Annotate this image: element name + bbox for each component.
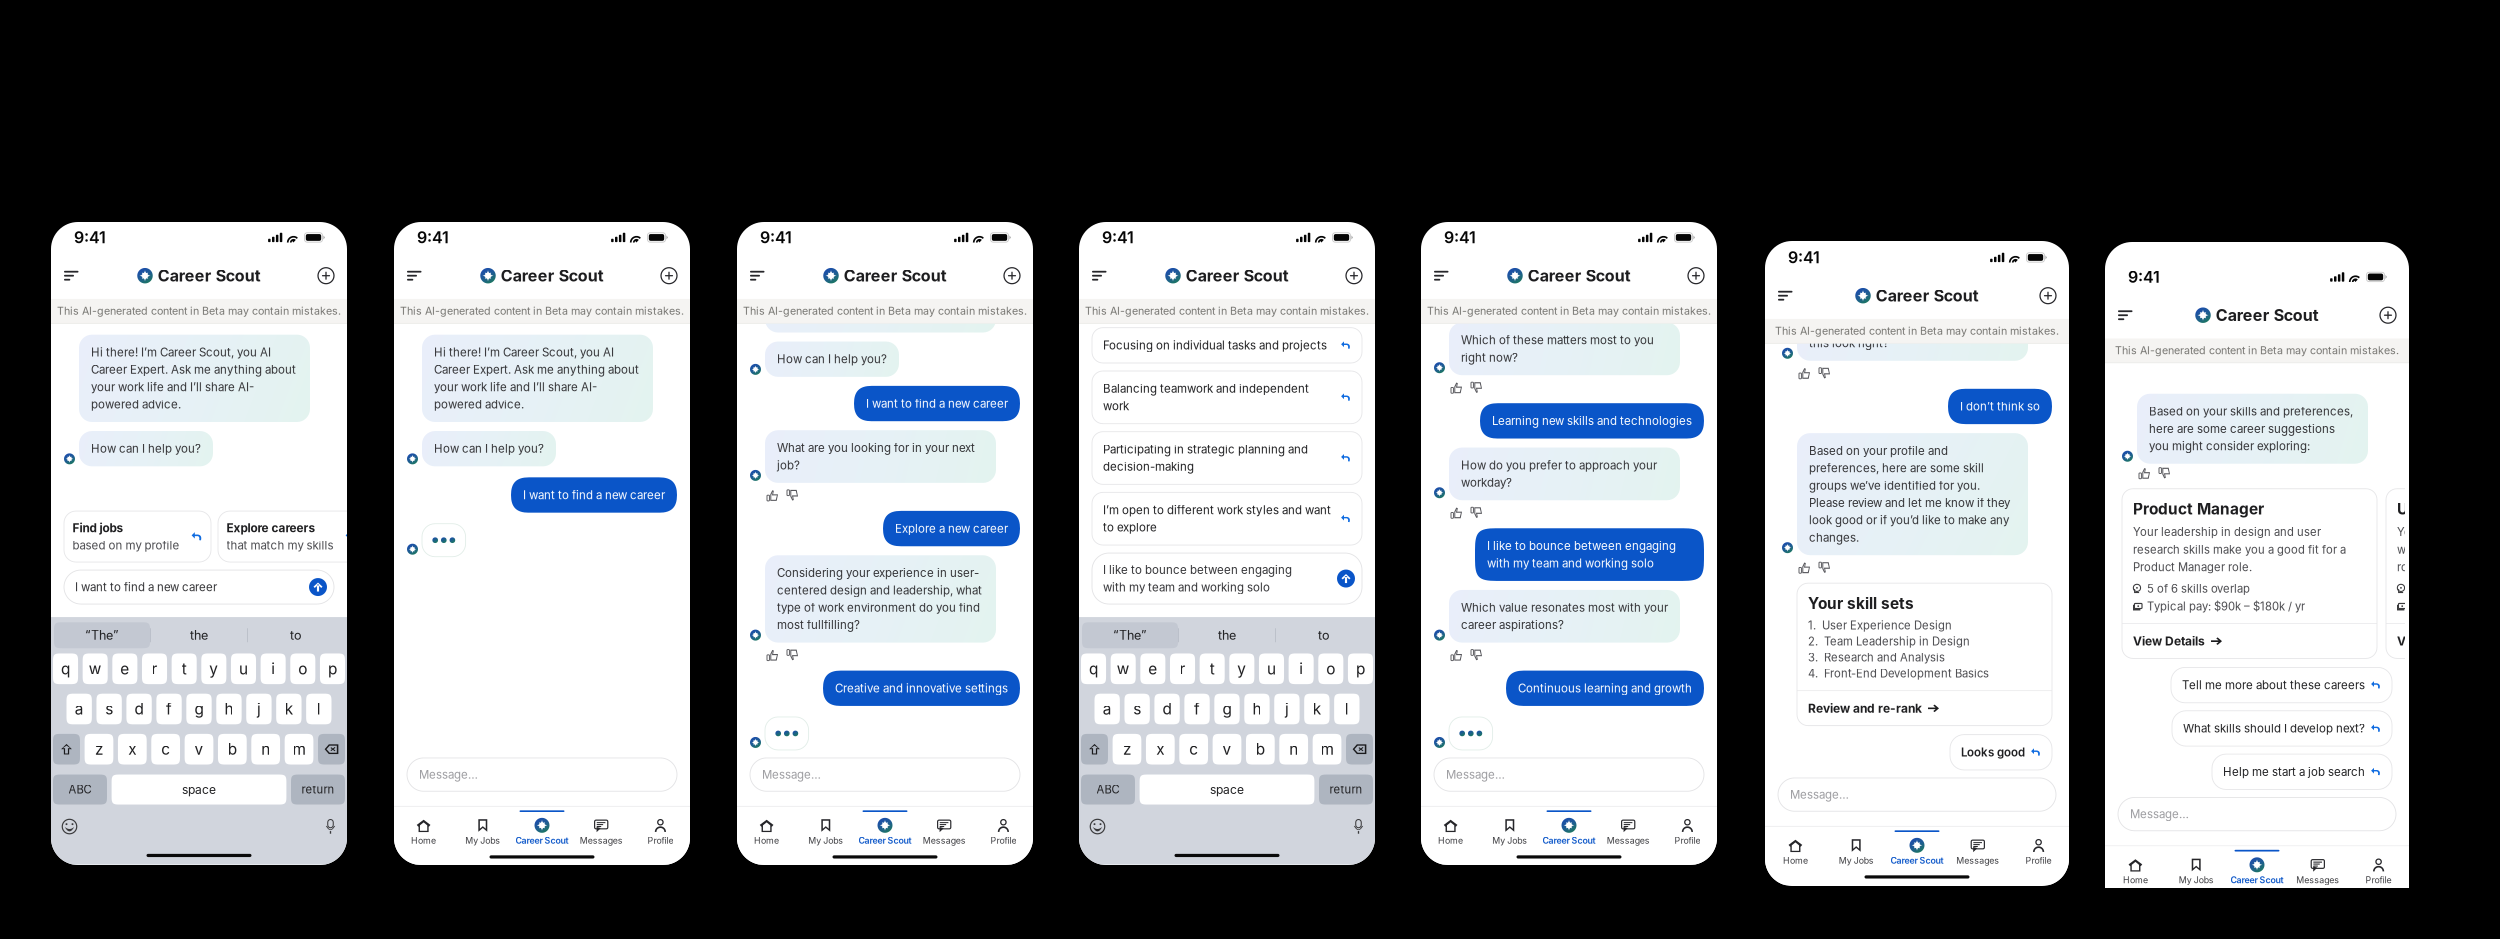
button[interactable]: Bad response <box>1819 562 1830 573</box>
button[interactable]: w <box>1111 653 1136 684</box>
button[interactable]: e <box>112 653 137 684</box>
button[interactable]: Home <box>1765 827 1826 870</box>
button[interactable]: i <box>261 653 286 684</box>
button[interactable]: Message… <box>1765 772 2069 826</box>
button[interactable]: h <box>1244 694 1270 724</box>
button[interactable]: t <box>172 653 197 684</box>
button[interactable]: return <box>291 774 345 804</box>
button[interactable]: Home <box>394 807 453 850</box>
button[interactable]: k <box>1304 694 1330 724</box>
button[interactable]: Message… <box>2105 791 2409 845</box>
button[interactable]: Bad response <box>1471 507 1482 518</box>
button[interactable]: Good response <box>1799 562 1810 573</box>
button[interactable]: Profile <box>2348 846 2409 889</box>
button[interactable]: Menu <box>1092 261 1122 291</box>
button[interactable]: Shift <box>53 734 80 764</box>
button[interactable]: Bad response <box>1471 382 1482 393</box>
button[interactable]: p <box>1348 653 1373 684</box>
button[interactable]: Home <box>2105 846 2166 889</box>
button[interactable]: h <box>216 694 242 724</box>
button[interactable]: d <box>126 694 152 724</box>
button[interactable]: Menu <box>407 261 437 291</box>
button[interactable]: y <box>201 653 226 684</box>
button[interactable]: Delete <box>1346 734 1373 764</box>
button[interactable]: Bad response <box>787 490 798 501</box>
button[interactable]: Help me start a job search <box>2212 754 2392 789</box>
button[interactable]: Messages <box>915 807 974 850</box>
button[interactable]: w <box>83 653 108 684</box>
button[interactable]: Profile <box>1658 807 1717 850</box>
button[interactable]: My Jobs <box>453 807 512 850</box>
button[interactable]: j <box>246 694 272 724</box>
button[interactable]: New chat <box>990 261 1020 291</box>
button[interactable]: x <box>1146 734 1175 764</box>
button[interactable]: u <box>1259 653 1284 684</box>
button[interactable]: i <box>1289 653 1314 684</box>
button[interactable]: n <box>251 734 280 764</box>
button[interactable]: ABC <box>1081 774 1135 804</box>
button[interactable]: c <box>151 734 180 764</box>
button[interactable]: Good response <box>767 490 778 501</box>
button[interactable]: My Jobs <box>1826 827 1887 870</box>
button[interactable]: My Jobs <box>1480 807 1539 850</box>
button[interactable]: Good response <box>1451 507 1462 518</box>
button[interactable]: d <box>1154 694 1180 724</box>
button[interactable]: Messages <box>572 807 631 850</box>
button[interactable]: Home <box>1421 807 1480 850</box>
button[interactable]: Good response <box>767 650 778 661</box>
button[interactable]: Collaborating closely with a small team <box>1092 284 1362 320</box>
button[interactable]: a <box>1094 694 1120 724</box>
button[interactable]: r <box>142 653 167 684</box>
button[interactable]: New chat <box>1674 261 1704 291</box>
button[interactable]: z <box>85 734 113 764</box>
button[interactable]: s <box>96 694 122 724</box>
button[interactable]: o <box>1318 653 1343 684</box>
button[interactable]: j <box>1274 694 1300 724</box>
button[interactable]: v <box>185 734 213 764</box>
button[interactable]: c <box>1179 734 1208 764</box>
button[interactable]: Career Scout <box>2227 846 2287 889</box>
button[interactable]: z <box>1113 734 1141 764</box>
button[interactable]: Messages <box>2287 846 2348 889</box>
button[interactable]: New chat <box>2026 281 2056 311</box>
button[interactable]: a <box>66 694 92 724</box>
button[interactable]: View Details <box>2386 624 2500 658</box>
button[interactable]: Good response <box>1451 650 1462 661</box>
button[interactable]: Messages <box>1599 807 1658 850</box>
button[interactable]: v <box>1213 734 1241 764</box>
button[interactable]: Messages <box>1947 827 2008 870</box>
button[interactable]: return <box>1319 774 1373 804</box>
button[interactable]: t <box>1200 653 1225 684</box>
button[interactable]: Profile <box>2008 827 2069 870</box>
button[interactable]: space <box>112 774 286 804</box>
button[interactable]: f <box>156 694 182 724</box>
button[interactable]: View Details <box>2122 624 2377 658</box>
button[interactable]: Good response <box>1451 382 1462 393</box>
button[interactable]: Good response <box>1799 368 1810 379</box>
button[interactable]: My Jobs <box>2166 846 2227 889</box>
button[interactable]: New chat <box>2366 300 2396 330</box>
button[interactable]: b <box>218 734 247 764</box>
button[interactable]: Home <box>737 807 796 850</box>
button[interactable]: g <box>186 694 212 724</box>
button[interactable]: Message… <box>1421 752 1717 806</box>
button[interactable]: q <box>1081 653 1106 684</box>
button[interactable]: p <box>320 653 345 684</box>
button[interactable]: Bad response <box>1471 650 1482 661</box>
button[interactable]: Profile <box>631 807 690 850</box>
button[interactable]: k <box>276 694 302 724</box>
button[interactable]: Career Scout <box>1887 827 1947 870</box>
button[interactable]: New chat <box>647 261 677 291</box>
button[interactable]: Career Scout <box>512 807 572 850</box>
button[interactable]: Emoji <box>1090 819 1105 834</box>
button[interactable]: Menu <box>64 261 94 291</box>
button[interactable]: Bad response <box>787 650 798 661</box>
button[interactable]: Balancing teamwork and independent work <box>1092 371 1362 424</box>
button[interactable]: Dictate <box>325 819 336 834</box>
button[interactable]: Shift <box>1081 734 1108 764</box>
button[interactable]: m <box>285 734 313 764</box>
button[interactable]: f <box>1184 694 1210 724</box>
button[interactable]: Message… <box>737 752 1033 806</box>
button[interactable]: m <box>1313 734 1341 764</box>
button[interactable]: Menu <box>2118 300 2148 330</box>
